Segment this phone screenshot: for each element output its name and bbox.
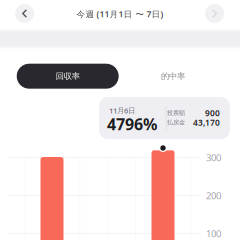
button[interactable]: 回収率 xyxy=(17,64,119,89)
staticText: 300 xyxy=(206,151,221,164)
staticText: 投票額 xyxy=(167,109,185,117)
button[interactable]: 的中率 xyxy=(122,64,224,89)
staticText: 払戻金 xyxy=(167,119,185,126)
staticText: 900 xyxy=(205,107,220,119)
button[interactable]: Previous week xyxy=(10,0,40,26)
staticText: 200 xyxy=(206,189,221,202)
staticText: 回収率 xyxy=(56,71,80,81)
staticText: 11月6日 xyxy=(109,105,135,116)
staticText: 4796% xyxy=(107,113,157,135)
staticText: 今週 (11月1日 〜 7日) xyxy=(76,8,163,20)
staticText: 的中率 xyxy=(161,71,185,81)
staticText: 43,170 xyxy=(193,117,220,128)
staticText: 100 xyxy=(206,227,221,240)
button[interactable]: Next week xyxy=(200,0,230,26)
